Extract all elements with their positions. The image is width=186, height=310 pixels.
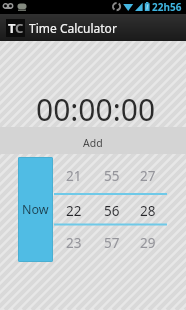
staticText: C <box>15 19 24 37</box>
staticText: T <box>8 19 15 37</box>
staticText: 28 <box>140 202 156 220</box>
staticText: 56 <box>104 202 120 220</box>
staticText: Now <box>22 201 49 218</box>
button[interactable] <box>93 157 131 262</box>
staticText: 55 <box>104 167 120 185</box>
staticText: 00:00:00 <box>36 89 156 130</box>
staticText: 29 <box>140 234 156 252</box>
button[interactable]: T <box>0 14 186 41</box>
button[interactable] <box>0 127 186 154</box>
staticText: 22h56 <box>152 0 182 14</box>
staticText: 23 <box>66 234 82 252</box>
staticText: 21 <box>66 167 82 185</box>
button[interactable] <box>55 157 93 262</box>
staticText: 27 <box>140 167 156 185</box>
staticText: Add <box>83 136 103 150</box>
button[interactable] <box>129 157 167 262</box>
staticText: Time Calculator <box>29 20 117 36</box>
button[interactable]: Now <box>18 157 53 262</box>
staticText: 57 <box>104 234 120 252</box>
staticText: 22 <box>66 202 82 220</box>
